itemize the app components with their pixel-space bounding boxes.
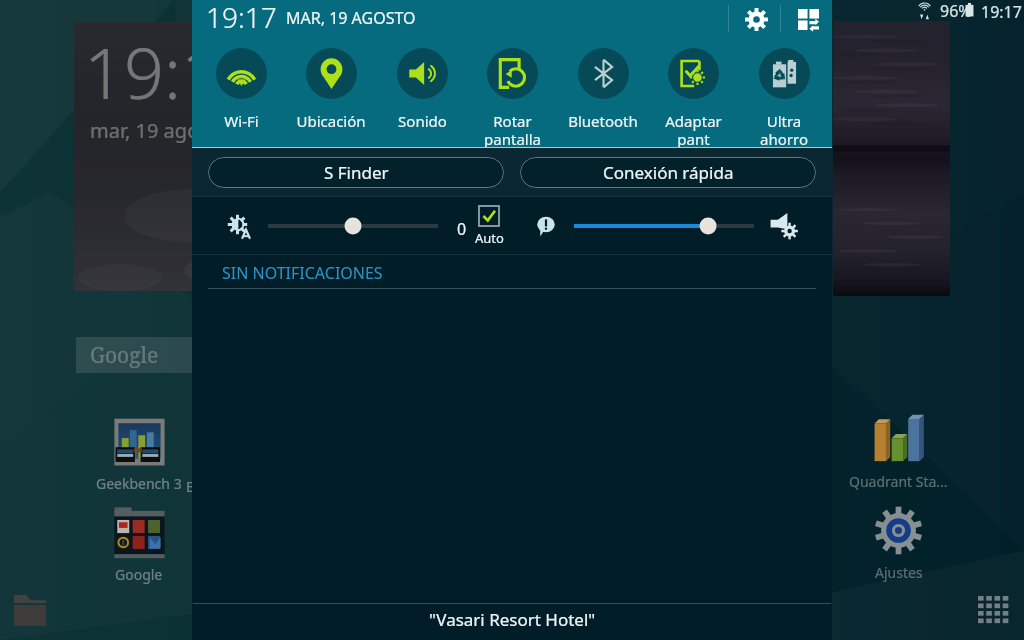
button[interactable] <box>833 21 950 296</box>
button[interactable]: Google <box>76 337 276 373</box>
staticText: Adaptar pant <box>665 111 722 147</box>
button[interactable]: Wi-Fi <box>197 48 285 131</box>
staticText: "Vasari Resort Hotel" <box>429 608 596 631</box>
staticText: mar, 19 agosto <box>90 117 229 144</box>
button[interactable]: Conexión rápida <box>520 157 816 188</box>
button[interactable]: Ultra ahorro <box>740 48 828 147</box>
button[interactable]: Sonido <box>378 48 466 131</box>
button[interactable]: Folder <box>14 595 46 626</box>
staticText: Quadrant Sta... <box>849 472 948 491</box>
button[interactable]: S Finder <box>208 157 504 188</box>
staticText: 19:17 <box>84 24 261 119</box>
staticText: SIN NOTIFICACIONES <box>222 262 383 284</box>
button[interactable] <box>870 502 927 559</box>
staticText: Google <box>90 341 159 370</box>
staticText: Ubicación <box>296 111 366 131</box>
staticText: Conexión rápida <box>603 161 734 184</box>
button[interactable]: 19:17 <box>74 22 274 291</box>
staticText: S Finder <box>324 161 389 184</box>
button[interactable]: Ubicación <box>287 48 375 131</box>
button[interactable] <box>111 504 168 561</box>
staticText: Ajustes <box>875 563 923 582</box>
staticText: Rotar pantalla <box>484 111 541 147</box>
button[interactable] <box>564 208 764 244</box>
button[interactable]: Sound settings <box>766 208 802 244</box>
staticText: MAR, 19 AGOSTO <box>286 7 416 29</box>
staticText: 19:17 <box>981 1 1022 23</box>
button[interactable] <box>111 413 168 470</box>
button[interactable]: Edit quick settings <box>784 0 832 38</box>
staticText: Geekbench 3 <box>96 474 182 493</box>
staticText: 96% <box>940 0 972 22</box>
button[interactable]: Rotar pantalla <box>468 48 556 147</box>
staticText: Sonido <box>398 111 447 131</box>
button[interactable]: Auto brightness <box>221 208 257 244</box>
staticText: Ultra ahorro <box>760 111 808 147</box>
staticText: E <box>186 477 194 496</box>
button[interactable] <box>870 411 927 468</box>
button[interactable]: Adaptar pant <box>649 48 737 147</box>
button[interactable] <box>258 208 448 244</box>
button[interactable]: Apps <box>978 596 1011 626</box>
staticText: Google <box>115 565 163 584</box>
staticText: Bluetooth <box>568 111 638 131</box>
staticText: Wi-Fi <box>224 111 259 131</box>
button[interactable]: Bluetooth <box>559 48 647 131</box>
button[interactable]: Auto <box>471 206 507 247</box>
staticText: Auto <box>475 229 504 247</box>
button[interactable]: Settings <box>732 0 780 38</box>
staticText: 0 <box>457 218 467 240</box>
staticText: 19:17 <box>206 0 277 35</box>
button[interactable]: Notification volume <box>528 208 564 244</box>
